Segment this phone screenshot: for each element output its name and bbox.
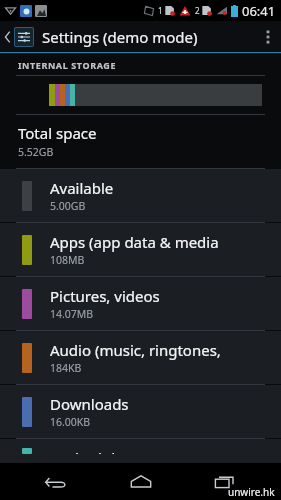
staticText: Apps (app data & media content) [50, 232, 281, 252]
button[interactable]: Cached data [0, 439, 281, 463]
button[interactable]: Available [0, 169, 281, 222]
staticText: 16.00KB [50, 415, 91, 429]
button[interactable]: Audio (music, ringtones, podcasts) [0, 331, 281, 384]
button[interactable]: Home [113, 463, 169, 500]
button[interactable]: Recent apps [197, 463, 253, 500]
staticText: unwire.hk [228, 485, 275, 499]
button[interactable]: Back [28, 463, 84, 500]
button[interactable]: Apps (app data & media content) [0, 223, 281, 276]
staticText: 184KB [50, 361, 82, 375]
staticText: 1 [158, 5, 163, 16]
button[interactable]: More options [255, 21, 281, 52]
button[interactable]: Total space [0, 115, 281, 168]
staticText: Pictures, videos [50, 286, 160, 306]
staticText: Cached data [50, 448, 138, 454]
staticText: Total space [18, 123, 97, 143]
staticText: 14.07MB [50, 307, 94, 321]
button[interactable]: Downloads [0, 385, 281, 438]
staticText: Settings (demo mode) [42, 27, 198, 47]
button[interactable]: Navigate up [0, 27, 36, 47]
staticText: 06:41 [242, 2, 276, 20]
staticText: 5.00GB [50, 199, 86, 213]
staticText: Downloads [50, 394, 129, 414]
staticText: Audio (music, ringtones, podcasts) [50, 340, 281, 360]
staticText: 2 [195, 5, 200, 16]
button[interactable]: Pictures, videos [0, 277, 281, 330]
staticText: 108MB [50, 253, 85, 267]
staticText: 5.52GB [18, 145, 54, 159]
staticText: INTERNAL STORAGE [18, 59, 117, 71]
staticText: Available [50, 178, 114, 198]
